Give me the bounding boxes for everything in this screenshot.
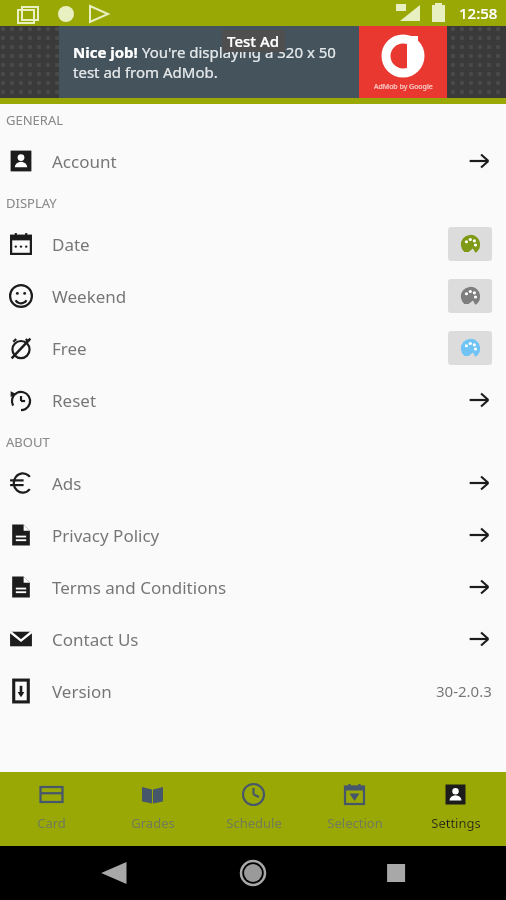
staticText: Selection [327, 814, 383, 832]
button[interactable]: Date [0, 218, 506, 270]
staticText: Weekend [52, 285, 448, 308]
button[interactable]: Terms and Conditions [0, 561, 506, 613]
staticText: Card [37, 814, 66, 832]
staticText: Privacy Policy [52, 524, 466, 547]
button[interactable]: Card [0, 772, 102, 846]
other: Open [466, 148, 492, 174]
staticText: Account [52, 150, 466, 173]
button[interactable]: Free [0, 322, 506, 374]
other: Open [466, 574, 492, 600]
button[interactable]: Account [0, 135, 506, 187]
staticText: test ad from AdMob. [73, 62, 218, 82]
staticText: Nice job! [73, 42, 142, 62]
button[interactable]: Schedule [203, 772, 304, 846]
button[interactable]: Ads [0, 457, 506, 509]
staticText: Terms and Conditions [52, 576, 466, 599]
staticText: AdMob by Google [374, 82, 433, 92]
other: Open [466, 470, 492, 496]
button[interactable]: Selection [304, 772, 405, 846]
button[interactable]: Privacy Policy [0, 509, 506, 561]
staticText: Ads [52, 472, 466, 495]
button[interactable]: Settings [405, 772, 506, 846]
button[interactable]: Choose colour [448, 227, 492, 261]
button[interactable]: Choose colour [448, 279, 492, 313]
staticText: Grades [131, 814, 175, 832]
button[interactable]: Contact Us [0, 613, 506, 665]
staticText: ABOUT [6, 433, 50, 451]
other: Open [466, 387, 492, 413]
staticText: DISPLAY [6, 194, 57, 212]
button[interactable]: Choose colour [448, 331, 492, 365]
staticText: Contact Us [52, 628, 466, 651]
staticText: Version [52, 680, 436, 703]
staticText: Schedule [226, 814, 282, 832]
button[interactable]: Weekend [0, 270, 506, 322]
staticText: Free [52, 337, 448, 360]
staticText: 30-2.0.3 [436, 681, 492, 701]
staticText: GENERAL [6, 111, 64, 129]
staticText: Settings [431, 814, 481, 832]
staticText: Date [52, 233, 448, 256]
button[interactable]: Reset [0, 374, 506, 426]
other: Open [466, 522, 492, 548]
button[interactable]: Version [0, 665, 506, 717]
staticText: Reset [52, 389, 466, 412]
button[interactable]: Grades [102, 772, 203, 846]
staticText: You're displaying a 320 x 50 [142, 42, 336, 62]
other: Open [466, 626, 492, 652]
staticText: Test Ad [227, 31, 280, 51]
staticText: 12:58 [459, 3, 498, 23]
